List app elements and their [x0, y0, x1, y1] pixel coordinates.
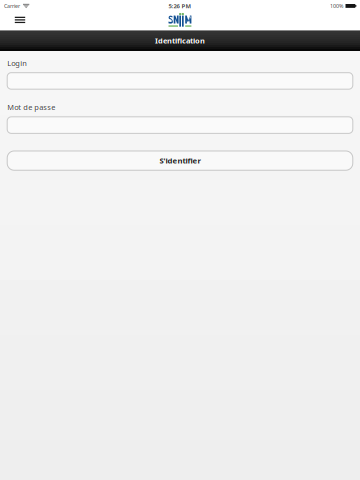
staticText: 100%: [330, 2, 343, 10]
staticText: Identification: [155, 35, 205, 46]
staticText: Login: [7, 58, 27, 68]
staticText: S'identifier: [159, 155, 200, 166]
staticText: 5:26 PM: [168, 2, 191, 10]
button[interactable]: Menu: [15, 11, 25, 29]
button[interactable]: S'identifier: [7, 151, 353, 170]
staticText: Mot de passe: [7, 102, 55, 112]
staticText: Carrier: [4, 2, 20, 10]
button[interactable]: Password field: [7, 117, 353, 133]
button[interactable]: Login field: [7, 73, 353, 89]
